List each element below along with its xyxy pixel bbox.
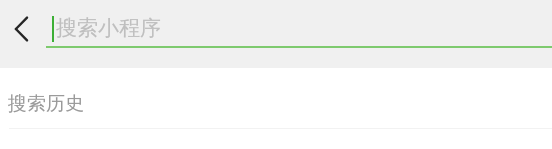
staticText: 搜索历史 [8, 92, 84, 116]
button[interactable]: Back [0, 5, 44, 53]
staticText: 搜索小程序 [56, 15, 161, 41]
button[interactable]: 搜索小程序 [46, 0, 552, 68]
